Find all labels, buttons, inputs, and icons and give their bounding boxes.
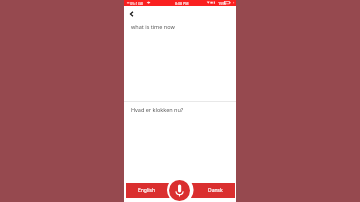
button[interactable]: English [126,183,180,198]
staticText: Hvad er klokken nu? [131,106,184,113]
staticText: 8:08 PM [175,1,189,6]
staticText: 05:1GB [130,1,144,6]
button[interactable]: Back [125,8,137,20]
staticText: English [138,187,156,194]
staticText: what is time now [131,23,175,30]
button[interactable]: Dansk [180,183,235,198]
button[interactable]: Microphone [169,180,190,201]
staticText: Dansk [208,187,223,194]
staticText: 15% [218,1,226,6]
